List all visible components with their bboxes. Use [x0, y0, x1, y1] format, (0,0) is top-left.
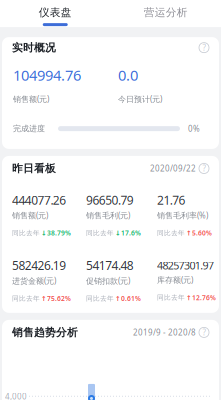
staticText: ? [202, 327, 205, 338]
staticText: 进货金额(元) [12, 275, 56, 286]
staticText: 0% [188, 123, 200, 134]
staticText: ↓38.79% [41, 229, 71, 237]
staticText: 销售毛利(元) [86, 210, 130, 221]
staticText: 4,000 [5, 391, 27, 400]
staticText: 同比去年 [157, 229, 185, 237]
staticText: ↑75.62% [41, 294, 71, 303]
staticText: 实时概况 [12, 41, 56, 54]
staticText: 昨日看板 [12, 162, 56, 175]
staticText: 完成进度 [13, 124, 45, 133]
staticText: ? [202, 42, 205, 53]
staticText: ↑0.61% [115, 294, 141, 303]
staticText: 同比去年 [12, 294, 40, 302]
staticText: 销售趋势分析 [12, 326, 78, 339]
staticText: 54174.48 [86, 257, 134, 273]
button[interactable]: Help [199, 43, 209, 53]
staticText: ? [202, 163, 205, 174]
staticText: ↑12.76% [186, 293, 216, 302]
staticText: ↑5.60% [186, 229, 212, 237]
button[interactable]: 仪表盘 [0, 0, 110, 27]
button[interactable]: 营运分析 [110, 0, 221, 27]
staticText: 仪表盘 [39, 6, 72, 19]
staticText: 同比去年 [157, 293, 185, 302]
staticText: 104994.76 [13, 65, 81, 85]
staticText: 444077.26 [12, 192, 66, 208]
staticText: 销售额(元) [12, 210, 48, 221]
staticText: 582426.19 [12, 257, 66, 273]
button[interactable]: Help [199, 163, 209, 173]
staticText: 今日预计(元) [118, 94, 162, 104]
staticText: 0.0 [118, 65, 138, 85]
staticText: 同比去年 [86, 294, 114, 302]
staticText: ↓17.6% [115, 229, 141, 237]
staticText: 销售额(元) [13, 94, 49, 104]
staticText: 2019/9 - 2020/8 [133, 327, 196, 338]
staticText: 同比去年 [86, 229, 114, 237]
staticText: 同比去年 [12, 229, 40, 237]
staticText: 营运分析 [144, 6, 188, 19]
button[interactable]: Help [199, 327, 209, 337]
staticText: 库存额(元) [157, 274, 193, 285]
staticText: 销售毛利率(%) [157, 210, 208, 221]
staticText: 96650.79 [86, 192, 134, 208]
staticText: 21.76 [157, 192, 186, 208]
staticText: 48257301.97 [157, 258, 214, 272]
staticText: 促销扣款(元) [86, 275, 130, 286]
staticText: 2020/09/22 [150, 163, 196, 174]
